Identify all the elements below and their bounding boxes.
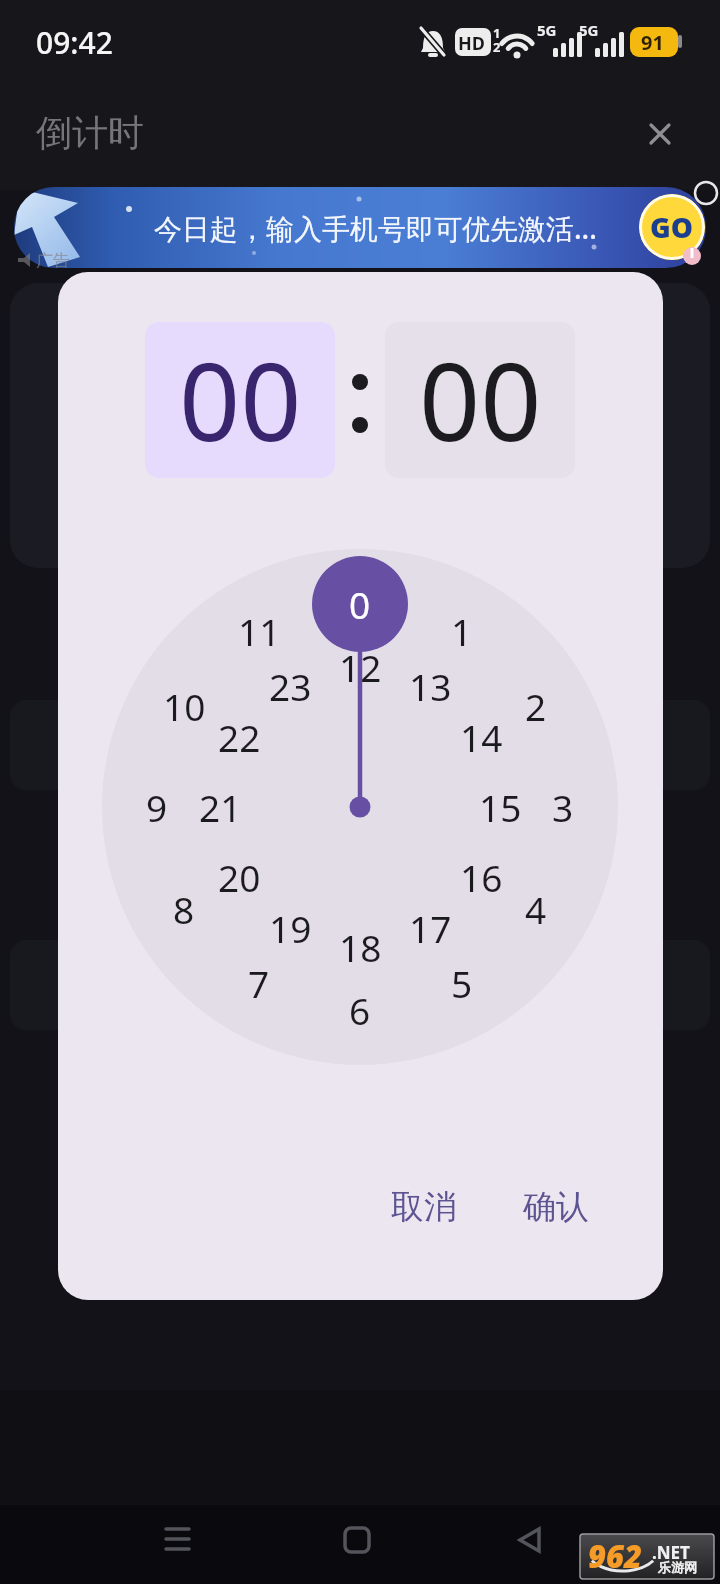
staticText: 09:42 <box>36 22 113 63</box>
staticText: 0 <box>349 579 371 629</box>
button[interactable]: 13 <box>400 660 460 712</box>
staticText: 22 <box>218 712 261 762</box>
button[interactable]: 17 <box>400 902 460 954</box>
staticText: 14 <box>460 712 503 762</box>
button[interactable]: 确认 <box>506 1177 606 1237</box>
staticText: 20 <box>218 852 261 902</box>
staticText: 13 <box>409 661 452 711</box>
button[interactable]: 22 <box>209 711 269 763</box>
staticText: 1 <box>451 606 473 656</box>
staticText: 23 <box>269 661 312 711</box>
staticText: 乐游网 <box>658 1559 697 1575</box>
staticText: 11 <box>238 606 281 656</box>
button[interactable]: 0 <box>330 578 390 630</box>
button[interactable] <box>315 1505 405 1584</box>
button[interactable]: 4 <box>506 883 566 935</box>
staticText: 16 <box>460 852 503 902</box>
staticText: 10 <box>163 681 206 731</box>
button[interactable] <box>120 1505 210 1584</box>
button[interactable]: 14 <box>451 711 511 763</box>
staticText: 倒计时 <box>36 110 144 155</box>
staticText: 8 <box>173 884 195 934</box>
staticText: 21 <box>199 782 242 832</box>
button[interactable]: 16 <box>451 851 511 903</box>
staticText: 今日起，输入手机号即可优先激活... <box>154 209 597 247</box>
staticText: 5 <box>451 958 473 1008</box>
button[interactable]: 21 <box>190 781 250 833</box>
staticText: 取消 <box>391 1186 457 1228</box>
button[interactable]: 10 <box>154 680 214 732</box>
button[interactable]: 1 <box>432 605 492 657</box>
button[interactable] <box>642 116 678 152</box>
button[interactable]: GO <box>14 187 706 268</box>
staticText: 6 <box>349 985 371 1035</box>
staticText: 3 <box>552 782 574 832</box>
staticText: 17 <box>409 903 452 953</box>
button[interactable]: 23 <box>260 660 320 712</box>
button[interactable]: 3 <box>533 781 593 833</box>
staticText: 4 <box>525 884 547 934</box>
button[interactable]: GO <box>639 194 705 260</box>
button[interactable]: 20 <box>209 851 269 903</box>
staticText: 2 <box>493 38 501 56</box>
staticText: 18 <box>339 922 382 972</box>
button[interactable]: 9 <box>127 781 187 833</box>
button[interactable]: 12 <box>330 641 390 693</box>
staticText: 15 <box>479 782 522 832</box>
staticText: 9 <box>146 782 168 832</box>
staticText: 广告 <box>36 250 70 271</box>
staticText: 5G <box>579 20 599 40</box>
staticText: 19 <box>269 903 312 953</box>
button[interactable]: 取消 <box>374 1177 474 1237</box>
staticText: 00 <box>419 327 542 473</box>
button[interactable]: 2 <box>506 680 566 732</box>
staticText: 确认 <box>523 1186 589 1228</box>
button[interactable]: 00 <box>385 322 575 478</box>
staticText: 5G <box>537 20 557 40</box>
staticText: HD <box>458 31 485 56</box>
button[interactable]: 7 <box>229 957 289 1009</box>
button[interactable]: 19 <box>260 902 320 954</box>
staticText: .NET <box>652 1541 690 1564</box>
button[interactable]: 18 <box>330 921 390 973</box>
staticText: 1 <box>493 24 501 42</box>
staticText: 2 <box>525 681 547 731</box>
button[interactable]: 15 <box>470 781 530 833</box>
button[interactable]: 00 <box>145 322 335 478</box>
button[interactable]: 8 <box>154 883 214 935</box>
staticText: GO <box>650 208 694 246</box>
button[interactable] <box>485 1505 575 1584</box>
staticText: 00 <box>179 327 302 473</box>
button[interactable]: 5 <box>432 957 492 1009</box>
staticText: 12 <box>339 642 382 692</box>
staticText: 962 <box>588 1535 642 1577</box>
button[interactable]: 11 <box>229 605 289 657</box>
button[interactable]: 6 <box>330 984 390 1036</box>
staticText: 91 <box>641 29 664 56</box>
staticText: 7 <box>248 958 270 1008</box>
